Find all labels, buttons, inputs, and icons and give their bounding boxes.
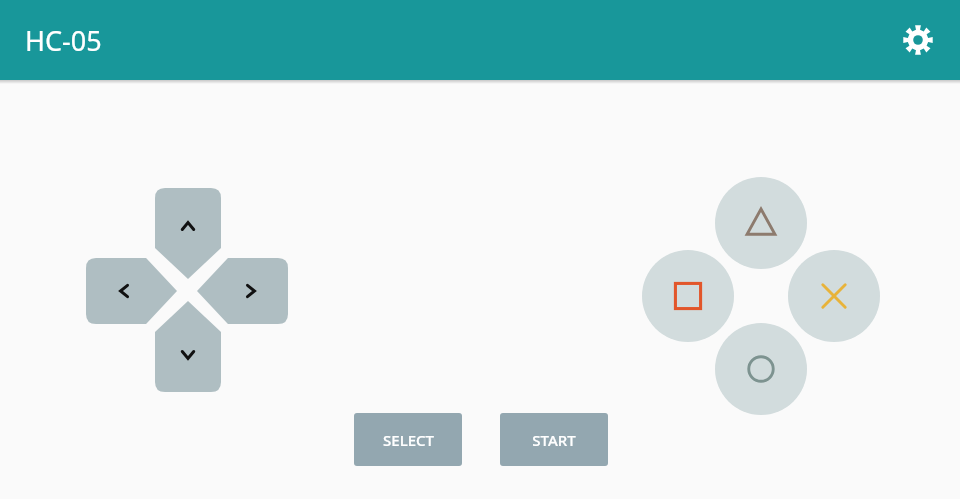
button[interactable]: Up xyxy=(155,188,221,279)
staticText: START xyxy=(532,430,576,450)
button[interactable]: Down xyxy=(155,301,221,392)
button[interactable]: Left xyxy=(86,258,177,324)
staticText: HC-05 xyxy=(25,22,102,59)
button[interactable]: START xyxy=(500,413,608,466)
button[interactable]: Square xyxy=(642,250,734,342)
button[interactable]: SELECT xyxy=(354,413,462,466)
button[interactable]: Settings xyxy=(894,16,942,64)
button[interactable]: Cross xyxy=(788,250,880,342)
button[interactable]: Triangle xyxy=(715,177,807,269)
button[interactable]: Right xyxy=(197,258,288,324)
button[interactable]: Circle xyxy=(715,323,807,415)
staticText: SELECT xyxy=(383,430,434,450)
